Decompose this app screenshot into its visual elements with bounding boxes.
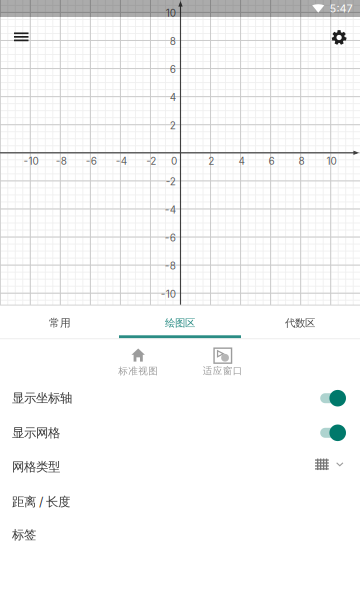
staticText: 4 xyxy=(170,91,176,103)
button[interactable]: 距离 / 长度 xyxy=(0,485,360,519)
staticText: 显示坐标轴 xyxy=(12,390,72,406)
staticText: 网格类型 xyxy=(12,459,60,475)
staticText: 2 xyxy=(170,119,176,132)
button[interactable]: 代数区 xyxy=(240,305,360,341)
button[interactable]: 标签 xyxy=(0,518,360,552)
staticText: -10 xyxy=(161,288,176,300)
staticText: 6 xyxy=(268,155,274,167)
staticText: 5:47 xyxy=(330,2,353,15)
staticText: -10 xyxy=(24,155,39,167)
button[interactable]: 显示坐标轴 xyxy=(0,381,360,415)
staticText: 代数区 xyxy=(285,316,315,329)
button[interactable]: 显示网格 xyxy=(0,416,360,450)
staticText: 8 xyxy=(170,35,176,47)
staticText: -8 xyxy=(165,260,176,272)
staticText: -2 xyxy=(166,176,176,188)
button[interactable]: 常用 xyxy=(0,305,120,341)
staticText: 10 xyxy=(326,155,336,167)
staticText: -4 xyxy=(116,155,127,167)
button[interactable]: 绘图区 xyxy=(120,305,240,341)
staticText: -4 xyxy=(165,204,176,216)
staticText: 4 xyxy=(238,155,244,167)
staticText: -6 xyxy=(86,155,97,167)
staticText: 6 xyxy=(170,63,176,75)
staticText: 绘图区 xyxy=(165,316,195,329)
button[interactable]: 网格类型 xyxy=(0,450,360,484)
staticText: -2 xyxy=(146,155,156,167)
button[interactable]: Menu xyxy=(6,23,36,50)
staticText: 8 xyxy=(298,155,304,167)
staticText: -8 xyxy=(56,155,67,167)
staticText: 显示网格 xyxy=(12,425,60,441)
staticText: 距离 / 长度 xyxy=(12,494,70,510)
button[interactable]: 标准视图 xyxy=(105,350,171,376)
staticText: 2 xyxy=(208,155,214,167)
button[interactable]: 适应窗口 xyxy=(190,348,256,376)
staticText: 0 xyxy=(171,155,177,167)
staticText: 标签 xyxy=(12,527,36,543)
staticText: -6 xyxy=(165,232,176,244)
staticText: 适应窗口 xyxy=(203,365,243,377)
button[interactable]: Settings xyxy=(324,23,354,52)
staticText: 标准视图 xyxy=(118,365,158,377)
staticText: 10 xyxy=(166,7,176,19)
staticText: 常用 xyxy=(49,316,71,330)
